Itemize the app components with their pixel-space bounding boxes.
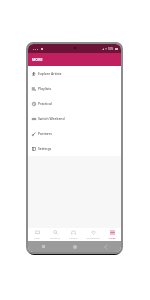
button[interactable]: Settings bbox=[28, 141, 121, 156]
staticText: Practical bbox=[38, 101, 52, 106]
staticText: Explore Artists bbox=[38, 71, 62, 76]
staticText: LISTEN bbox=[69, 236, 78, 239]
staticText: Playlists bbox=[38, 86, 52, 91]
button[interactable]: LISTEN bbox=[64, 228, 83, 241]
button[interactable]: Practical bbox=[28, 96, 121, 111]
button[interactable]: SEARCH bbox=[46, 228, 64, 241]
button[interactable]: Explore Artists bbox=[28, 66, 121, 81]
button[interactable]: MORE bbox=[102, 228, 121, 241]
staticText: MORE bbox=[32, 57, 43, 62]
button[interactable]: LIVE bbox=[28, 228, 46, 241]
button[interactable]: Switch Weekend bbox=[28, 111, 121, 126]
staticText: Settings bbox=[38, 146, 52, 151]
staticText: MORE bbox=[108, 236, 116, 239]
staticText: SEARCH bbox=[50, 236, 60, 239]
staticText: LIVE bbox=[34, 236, 40, 239]
staticText: 10% bbox=[108, 47, 114, 51]
staticText: Switch Weekend bbox=[38, 116, 65, 121]
staticText: FAVOURITE bbox=[86, 236, 100, 239]
button[interactable]: Playlists bbox=[28, 81, 121, 96]
staticText: Partners bbox=[38, 131, 52, 136]
button[interactable]: Partners bbox=[28, 126, 121, 141]
button[interactable]: FAVOURITE bbox=[83, 228, 102, 241]
